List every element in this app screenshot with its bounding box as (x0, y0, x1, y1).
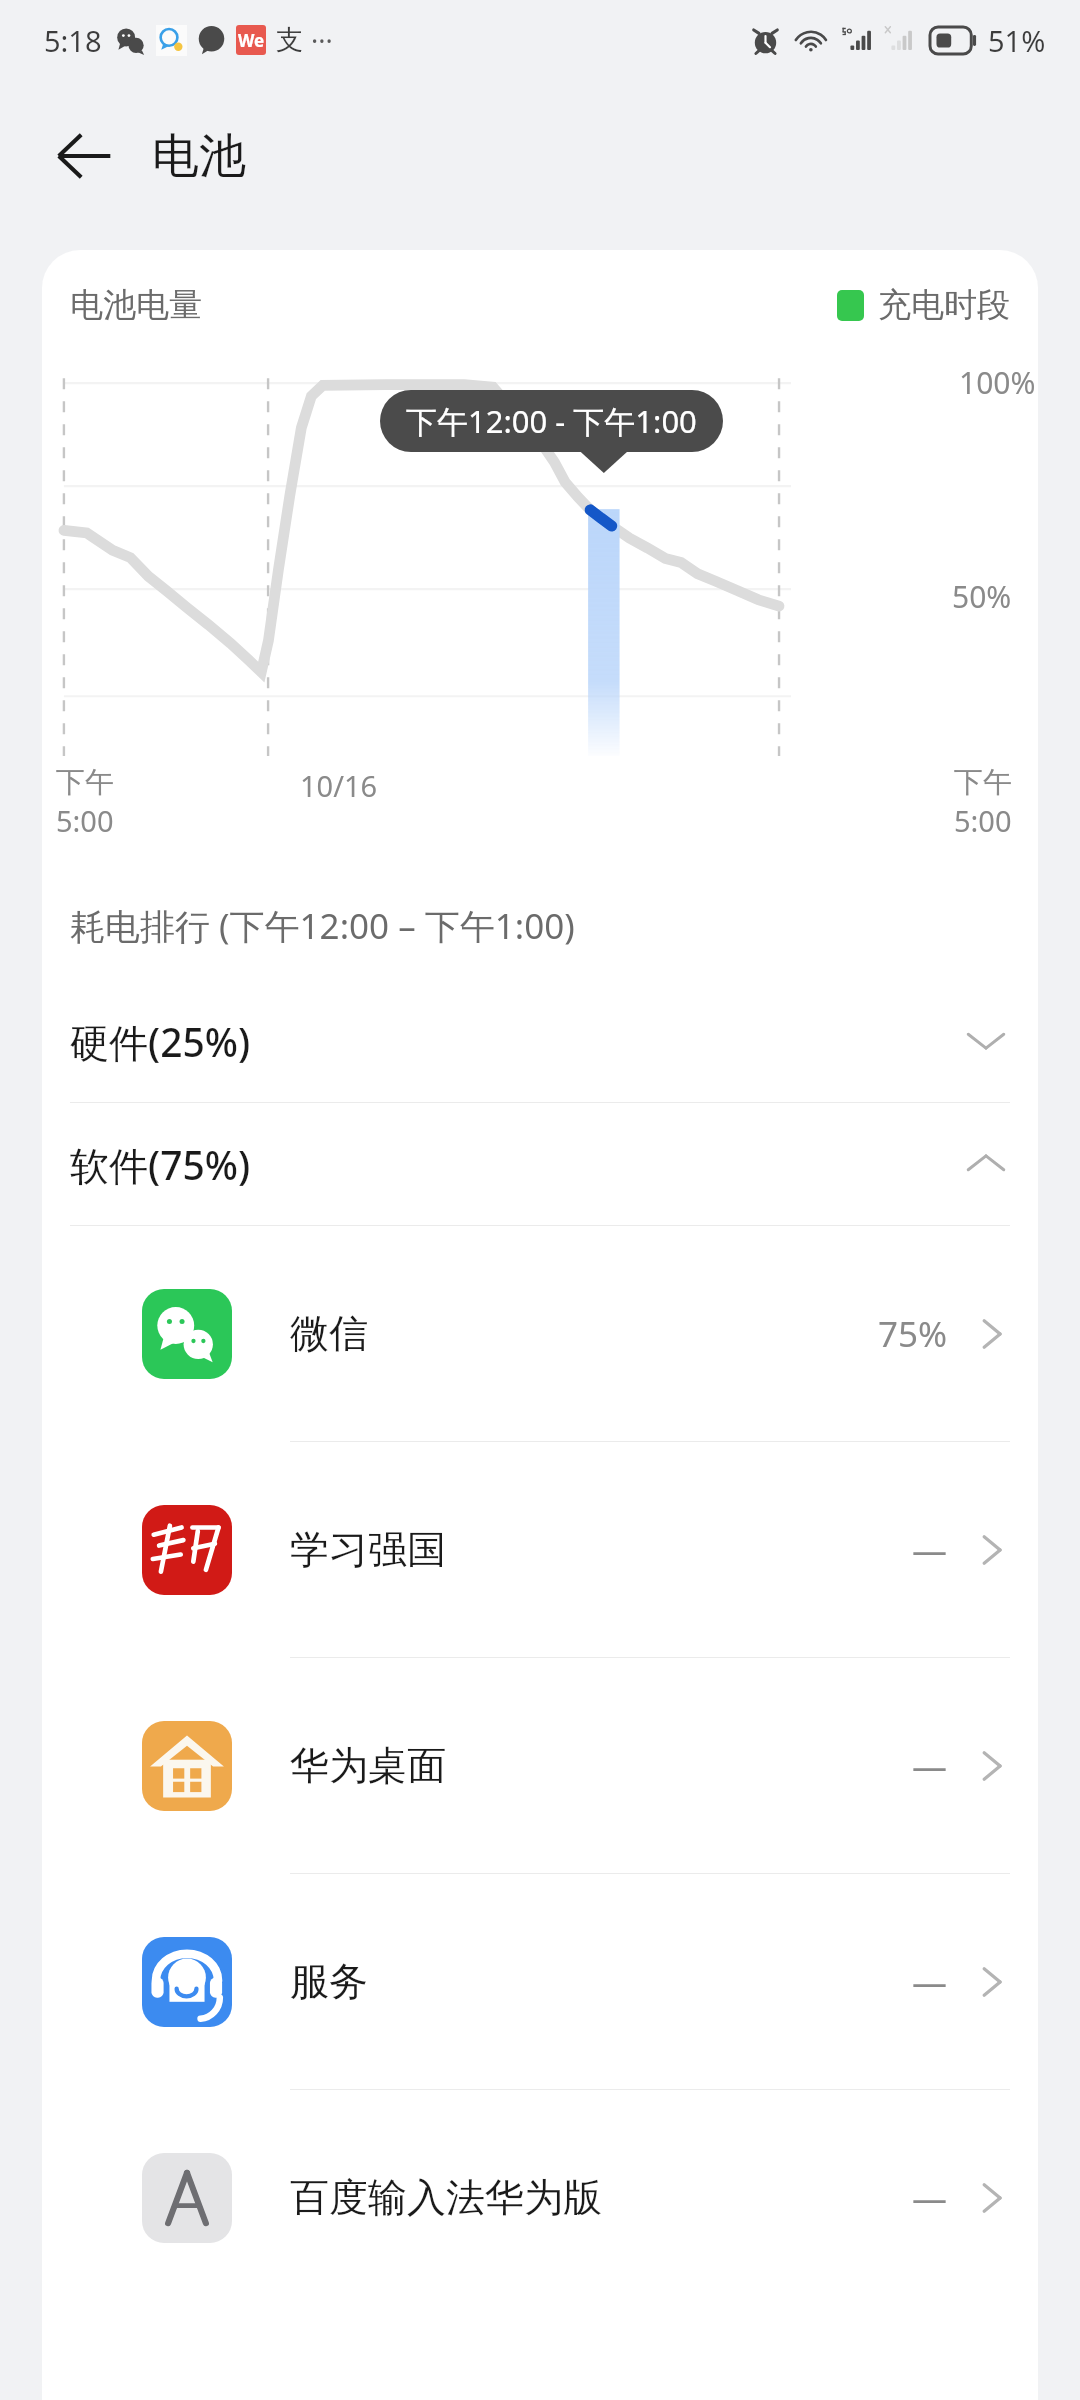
staticText: 下午 (56, 764, 114, 801)
staticText: 电池电量 (70, 284, 202, 326)
button[interactable]: 服务 (42, 1874, 1038, 2090)
button[interactable]: 返回 (38, 110, 130, 202)
staticText: We (238, 29, 265, 52)
staticText: — (912, 1526, 948, 1574)
staticText: 电池 (152, 127, 246, 186)
staticText: 充电时段 (878, 284, 1010, 326)
staticText: 支 (276, 23, 303, 57)
staticText: 下午12:00 - 下午1:00 (406, 400, 697, 442)
staticText: 50% (952, 576, 1012, 617)
staticText: 100% (959, 362, 1036, 403)
staticText: 10/16 (300, 766, 378, 805)
staticText: 百度输入法华为版 (290, 2173, 602, 2222)
staticText: — (912, 1742, 948, 1790)
staticText: 服务 (290, 1957, 368, 2006)
button[interactable]: 软件(75%) (42, 1103, 1038, 1225)
button[interactable]: 华为桌面 (42, 1658, 1038, 1874)
staticText: 学习强国 (290, 1525, 446, 1574)
staticText: 51% (988, 21, 1046, 60)
staticText: 硬件(25%) (70, 1015, 251, 1068)
staticText: 软件(75%) (70, 1138, 251, 1191)
staticText: 华为桌面 (290, 1741, 446, 1790)
button[interactable]: 学习强国 (42, 1442, 1038, 1658)
staticText: 5:18 (44, 21, 102, 60)
staticText: ··· (311, 22, 333, 59)
staticText: 微信 (290, 1309, 368, 1358)
button[interactable]: 百度输入法华为版 (42, 2090, 1038, 2305)
staticText: 耗电排行 (下午12:00 – 下午1:00) (70, 902, 575, 950)
button[interactable]: 硬件(25%) (42, 980, 1038, 1102)
staticText: 5:00 (56, 801, 114, 840)
staticText: 5:00 (954, 801, 1012, 840)
button[interactable]: 微信 (42, 1226, 1038, 1442)
staticText: 下午 (954, 764, 1012, 801)
staticText: — (912, 2174, 948, 2222)
staticText: — (912, 1958, 948, 2006)
staticText: 75% (878, 1310, 948, 1358)
